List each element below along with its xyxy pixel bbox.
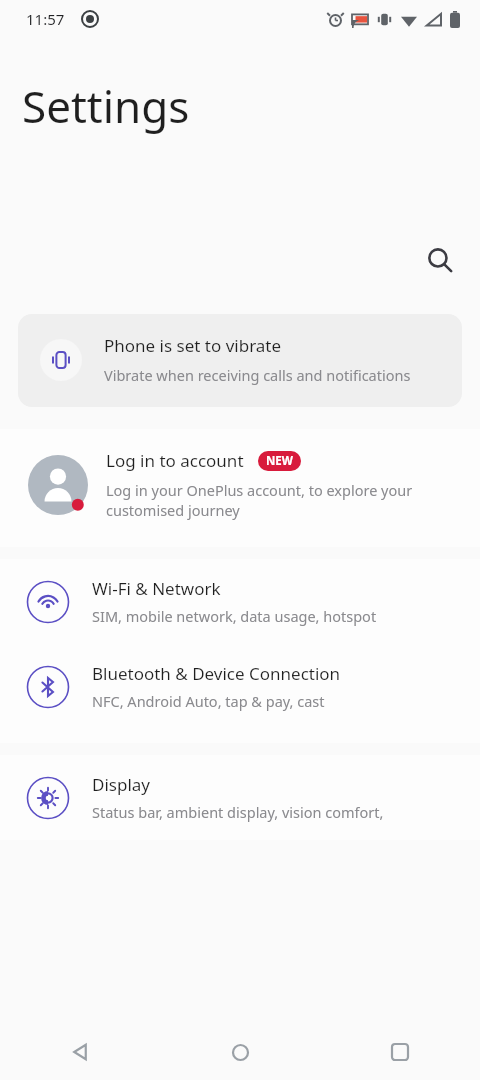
- staticText: Log in your OnePlus account, to explore …: [106, 480, 462, 521]
- staticText: Display: [92, 773, 150, 796]
- button[interactable]: Search: [416, 236, 464, 284]
- button[interactable]: Wi-Fi & Network: [0, 559, 480, 644]
- staticText: Phone is set to vibrate: [104, 334, 282, 357]
- staticText: NEW: [266, 453, 293, 469]
- staticText: Wi-Fi & Network: [92, 577, 221, 600]
- staticText: Status bar, ambient display, vision comf…: [92, 802, 384, 822]
- button[interactable]: Back: [0, 1024, 160, 1080]
- staticText: SIM, mobile network, data usage, hotspot: [92, 606, 377, 626]
- staticText: 11:57: [26, 9, 65, 29]
- button[interactable]: Recent apps: [320, 1024, 480, 1080]
- staticText: Bluetooth & Device Connection: [92, 662, 341, 685]
- button[interactable]: Phone is set to vibrate: [18, 314, 462, 407]
- button[interactable]: Log in to account: [0, 429, 480, 547]
- staticText: NFC, Android Auto, tap & pay, cast: [92, 691, 325, 711]
- staticText: Log in to account: [106, 449, 244, 472]
- button[interactable]: Bluetooth & Device Connection: [0, 644, 480, 729]
- button[interactable]: Display: [0, 755, 480, 840]
- staticText: Vibrate when receiving calls and notific…: [104, 365, 411, 385]
- staticText: Settings: [22, 76, 190, 136]
- button[interactable]: Home: [160, 1024, 320, 1080]
